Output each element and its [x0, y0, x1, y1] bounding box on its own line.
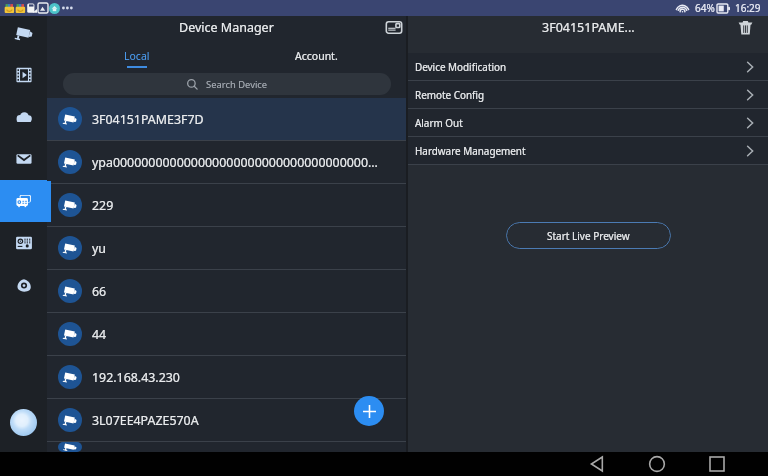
button[interactable]: 229 — [47, 184, 406, 226]
button[interactable]: Messages — [0, 138, 47, 180]
button[interactable]: Alarm Out — [408, 109, 768, 136]
button[interactable]: 44 — [47, 313, 406, 355]
staticText: Device Manager — [179, 19, 274, 36]
staticText: 66 — [92, 283, 107, 300]
staticText: Account. — [295, 49, 338, 63]
button[interactable]: 192.168.43.230 — [47, 356, 406, 398]
staticText: 229 — [92, 197, 114, 214]
staticText: 3F04151PAME... — [542, 19, 635, 36]
button[interactable]: Control panel — [0, 222, 47, 264]
button[interactable]: 3L07EE4PAZE570A — [47, 399, 406, 441]
button[interactable]: Add device — [354, 396, 384, 426]
button[interactable]: Live view — [0, 12, 47, 54]
staticText: Search Device — [206, 78, 268, 91]
button[interactable]: Home — [635, 452, 679, 476]
button[interactable]: yu — [47, 227, 406, 269]
button[interactable]: ypa0000000000000000000000000000000000000… — [47, 141, 406, 183]
button[interactable]: Device list view — [383, 16, 405, 38]
button[interactable]: Search Device — [63, 73, 391, 95]
button[interactable]: Start Live Preview — [506, 222, 671, 249]
button[interactable]: Remote Config — [408, 81, 768, 108]
staticText: Remote Config — [415, 88, 485, 101]
button[interactable]: Local — [47, 38, 226, 71]
button[interactable]: Recent apps — [695, 452, 739, 476]
staticText: 3F04151PAME3F7D — [92, 111, 204, 128]
button[interactable]: Device Modification — [408, 53, 768, 80]
button[interactable]: Delete device — [734, 16, 756, 38]
staticText: Start Live Preview — [547, 229, 630, 243]
staticText: 192.168.43.230 — [92, 369, 180, 386]
staticText: 3L07EE4PAZE570A — [92, 412, 199, 429]
button[interactable]: Hardware Management — [408, 137, 768, 164]
button[interactable] — [47, 442, 406, 452]
button[interactable]: Playback — [0, 54, 47, 96]
staticText: Device Modification — [415, 60, 507, 73]
button[interactable]: Back — [575, 452, 619, 476]
staticText: ypa0000000000000000000000000000000000000… — [92, 154, 380, 171]
staticText: 64% — [695, 1, 715, 15]
button[interactable]: 3F04151PAME3F7D — [47, 98, 406, 140]
button[interactable]: 66 — [47, 270, 406, 312]
button[interactable]: Cloud — [0, 96, 47, 138]
staticText: Local — [124, 49, 150, 63]
button[interactable]: Dome camera — [0, 264, 47, 306]
staticText: 44 — [92, 326, 107, 343]
staticText: yu — [92, 240, 106, 257]
staticText: 16:29 — [735, 1, 761, 15]
staticText: Hardware Management — [415, 144, 526, 157]
button[interactable]: Devices — [0, 180, 47, 222]
staticText: Alarm Out — [415, 116, 463, 129]
button[interactable]: Account. — [226, 38, 406, 71]
button[interactable]: Profile — [10, 409, 37, 436]
